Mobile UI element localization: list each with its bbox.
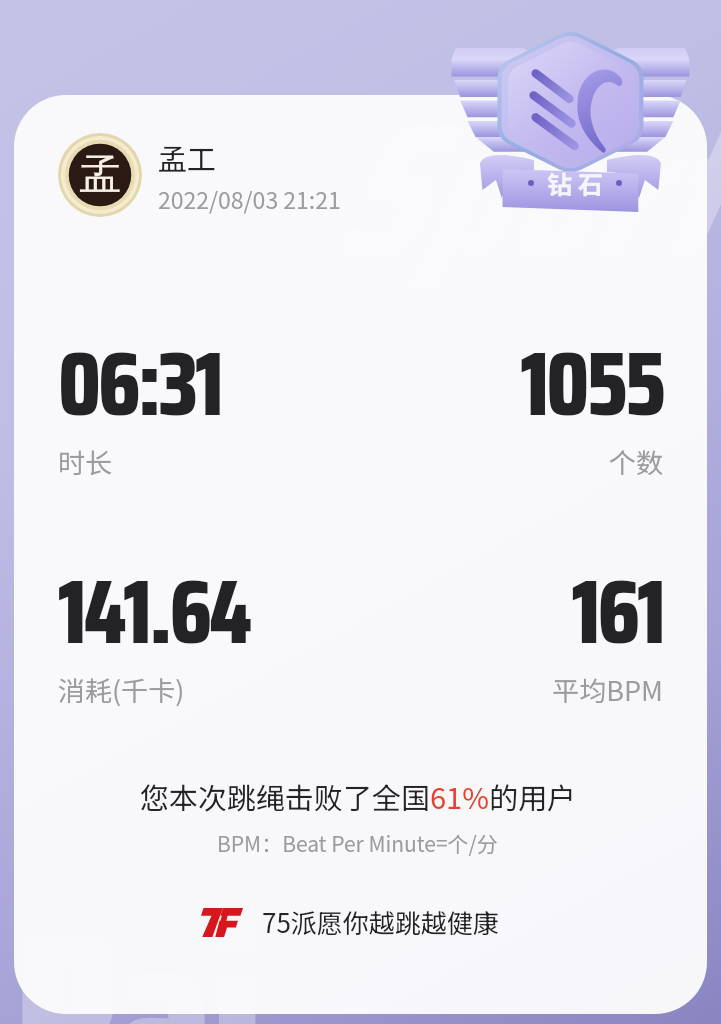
staticText: 06:31 xyxy=(58,313,358,455)
staticText: 孟工 xyxy=(158,136,217,178)
staticText: 75派愿你越跳越健康 xyxy=(262,903,499,941)
staticText: Pai xyxy=(14,840,263,1024)
staticText: 1055 xyxy=(358,313,663,455)
staticText: 消耗(千卡) xyxy=(58,670,358,709)
staticText: Sport xyxy=(330,40,715,339)
staticText: 2022/08/03 21:21 xyxy=(158,182,341,215)
staticText: 钻 石 xyxy=(547,165,603,201)
staticText: 个数 xyxy=(358,442,663,481)
staticText: 141.64 xyxy=(58,541,358,683)
staticText: 时长 xyxy=(58,442,358,481)
staticText: 您本次跳绳击败了全国61%的用户 xyxy=(140,775,576,817)
button[interactable]: 75派愿你越跳越健康 xyxy=(201,903,499,941)
button[interactable]: 孟 xyxy=(58,133,341,217)
staticText: BPM：Beat Per Minute=个/分 xyxy=(217,828,498,858)
staticText: 161 xyxy=(358,541,663,683)
staticText: 平均BPM xyxy=(358,670,663,709)
button[interactable]: 钻石等级徽章 xyxy=(452,16,714,216)
staticText: 孟 xyxy=(79,149,121,202)
